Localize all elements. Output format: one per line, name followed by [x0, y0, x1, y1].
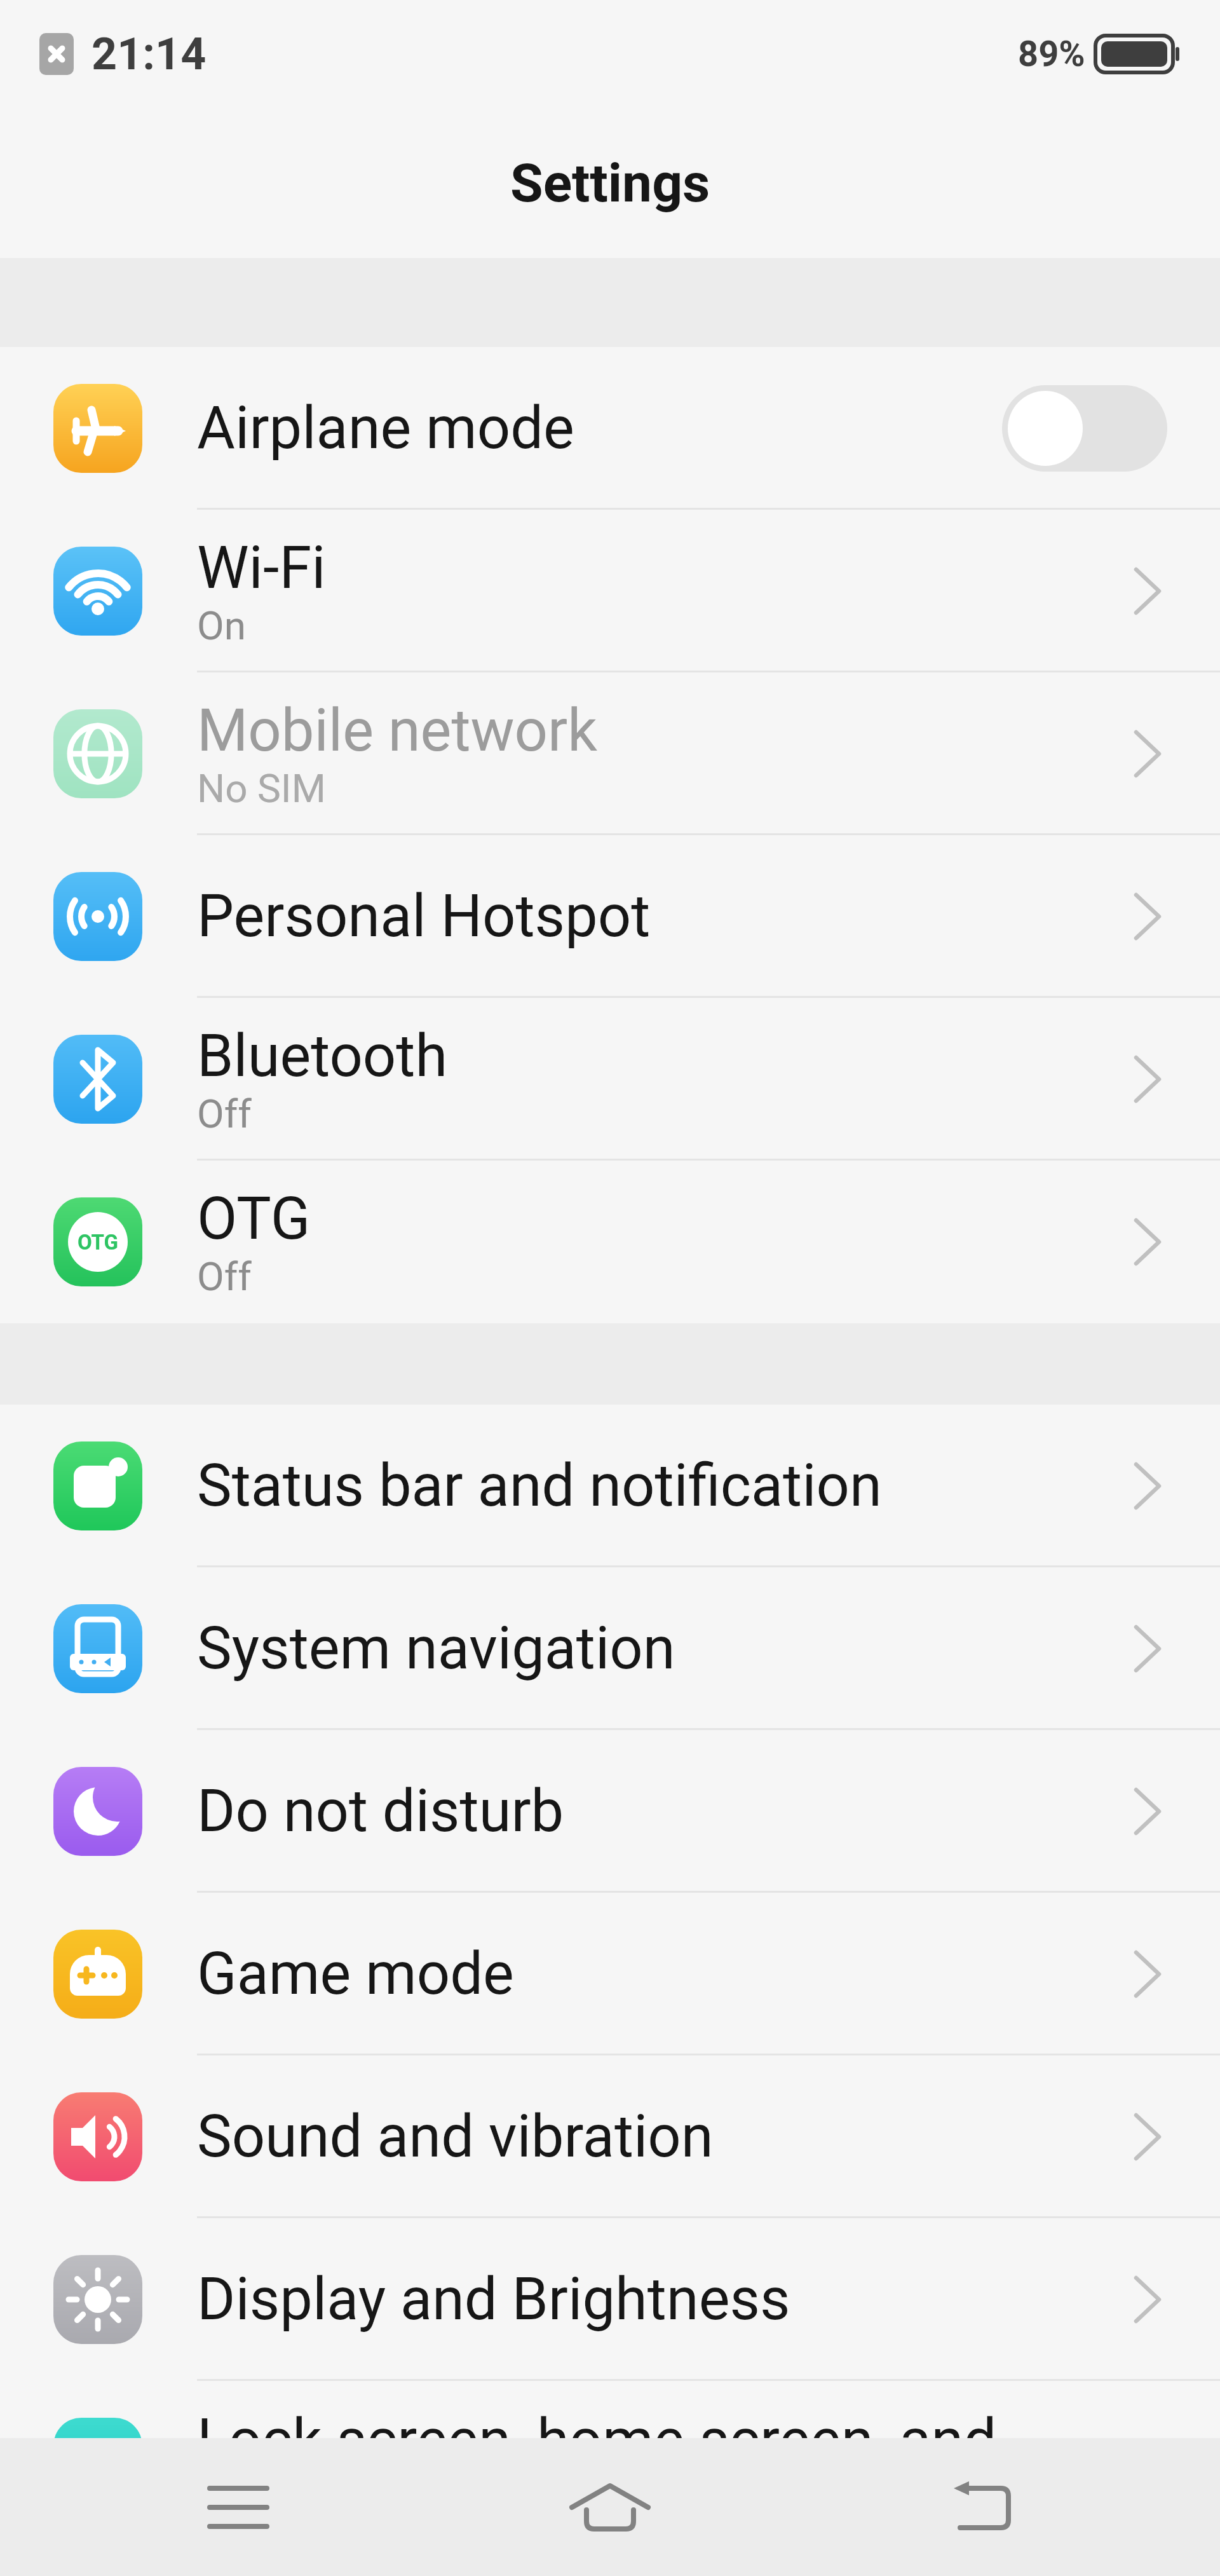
staticText: Wi-Fi [197, 534, 326, 603]
button[interactable]: Display and Brightness [0, 2218, 1220, 2381]
staticText: Status bar and notification [197, 1452, 882, 1520]
button[interactable]: Bluetooth [0, 998, 1220, 1161]
staticText: Off [197, 1253, 252, 1300]
staticText: Mobile network [197, 697, 597, 765]
staticText: Airplane mode [197, 394, 574, 463]
staticText: Settings [510, 152, 710, 214]
staticText: 21:14 [91, 28, 207, 80]
button[interactable]: Mobile network [0, 672, 1220, 835]
staticText: OTG [78, 1230, 118, 1255]
staticText: Display and Brightness [197, 2265, 790, 2334]
staticText: 89% [1018, 33, 1085, 75]
button[interactable]: OTG [0, 1161, 1220, 1323]
staticText: wallpaper [197, 2475, 450, 2544]
button[interactable] [175, 2444, 302, 2571]
button[interactable] [546, 2444, 674, 2571]
staticText: On [197, 603, 246, 649]
staticText: Sound and vibration [197, 2102, 714, 2171]
button[interactable]: Airplane mode [0, 347, 1220, 510]
staticText: Bluetooth [197, 1022, 448, 1091]
staticText: No SIM [197, 765, 326, 812]
button[interactable] [918, 2444, 1045, 2571]
staticText: Do not disturb [197, 1777, 564, 1846]
button[interactable]: Sound and vibration [0, 2055, 1220, 2218]
button[interactable]: Lock screen, home screen, and [0, 2381, 1220, 2544]
staticText: OTG [197, 1185, 311, 1253]
button[interactable]: Wi-Fi [0, 510, 1220, 672]
button[interactable]: Do not disturb [0, 1730, 1220, 1893]
button[interactable]: Game mode [0, 1893, 1220, 2055]
button[interactable] [1002, 385, 1167, 472]
button[interactable]: Personal Hotspot [0, 835, 1220, 998]
button[interactable]: Status bar and notification [0, 1405, 1220, 1567]
staticText: Off [197, 1091, 252, 1137]
staticText: Personal Hotspot [197, 882, 651, 951]
button[interactable]: System navigation [0, 1567, 1220, 1730]
staticText: Game mode [197, 1940, 514, 2008]
staticText: Lock screen, home screen, and [197, 2406, 997, 2475]
staticText: System navigation [197, 1614, 675, 1683]
